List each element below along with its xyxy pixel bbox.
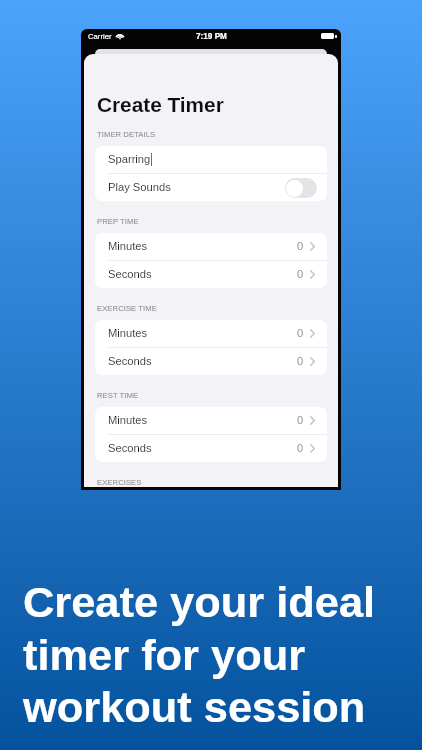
staticText: REST TIME — [97, 391, 139, 400]
button[interactable]: Seconds — [95, 261, 327, 288]
staticText: Create Timer — [97, 93, 224, 116]
staticText: 0 — [297, 327, 304, 340]
staticText: EXERCISE TIME — [97, 304, 157, 313]
staticText: Carrier — [88, 32, 112, 41]
button[interactable]: Play Sounds — [95, 174, 327, 201]
other: Battery — [321, 33, 334, 39]
staticText: Seconds — [108, 442, 152, 455]
staticText: Seconds — [108, 268, 152, 281]
staticText: Sparring — [108, 153, 151, 166]
button[interactable]: Seconds — [95, 435, 327, 462]
staticText: 0 — [297, 268, 304, 281]
staticText: 0 — [297, 414, 304, 427]
staticText: 7:19 PM — [196, 32, 227, 41]
button[interactable]: Seconds — [95, 348, 327, 375]
staticText: 0 — [297, 442, 304, 455]
staticText: Minutes — [108, 414, 148, 427]
staticText: Create your ideal timer for your workout… — [23, 578, 376, 731]
button[interactable]: Minutes — [95, 233, 327, 260]
button[interactable]: Minutes — [95, 407, 327, 434]
staticText: Seconds — [108, 355, 152, 368]
staticText: 0 — [297, 240, 304, 253]
staticText: Minutes — [108, 327, 148, 340]
button[interactable]: Sparring — [95, 146, 327, 173]
staticText: TIMER DETAILS — [97, 130, 156, 139]
staticText: EXERCISES — [97, 478, 142, 487]
staticText: Minutes — [108, 240, 148, 253]
staticText: Play Sounds — [108, 181, 171, 194]
staticText: PREP TIME — [97, 217, 139, 226]
button[interactable]: Minutes — [95, 320, 327, 347]
staticText: 0 — [297, 355, 304, 368]
other: Wi-Fi — [115, 31, 125, 41]
